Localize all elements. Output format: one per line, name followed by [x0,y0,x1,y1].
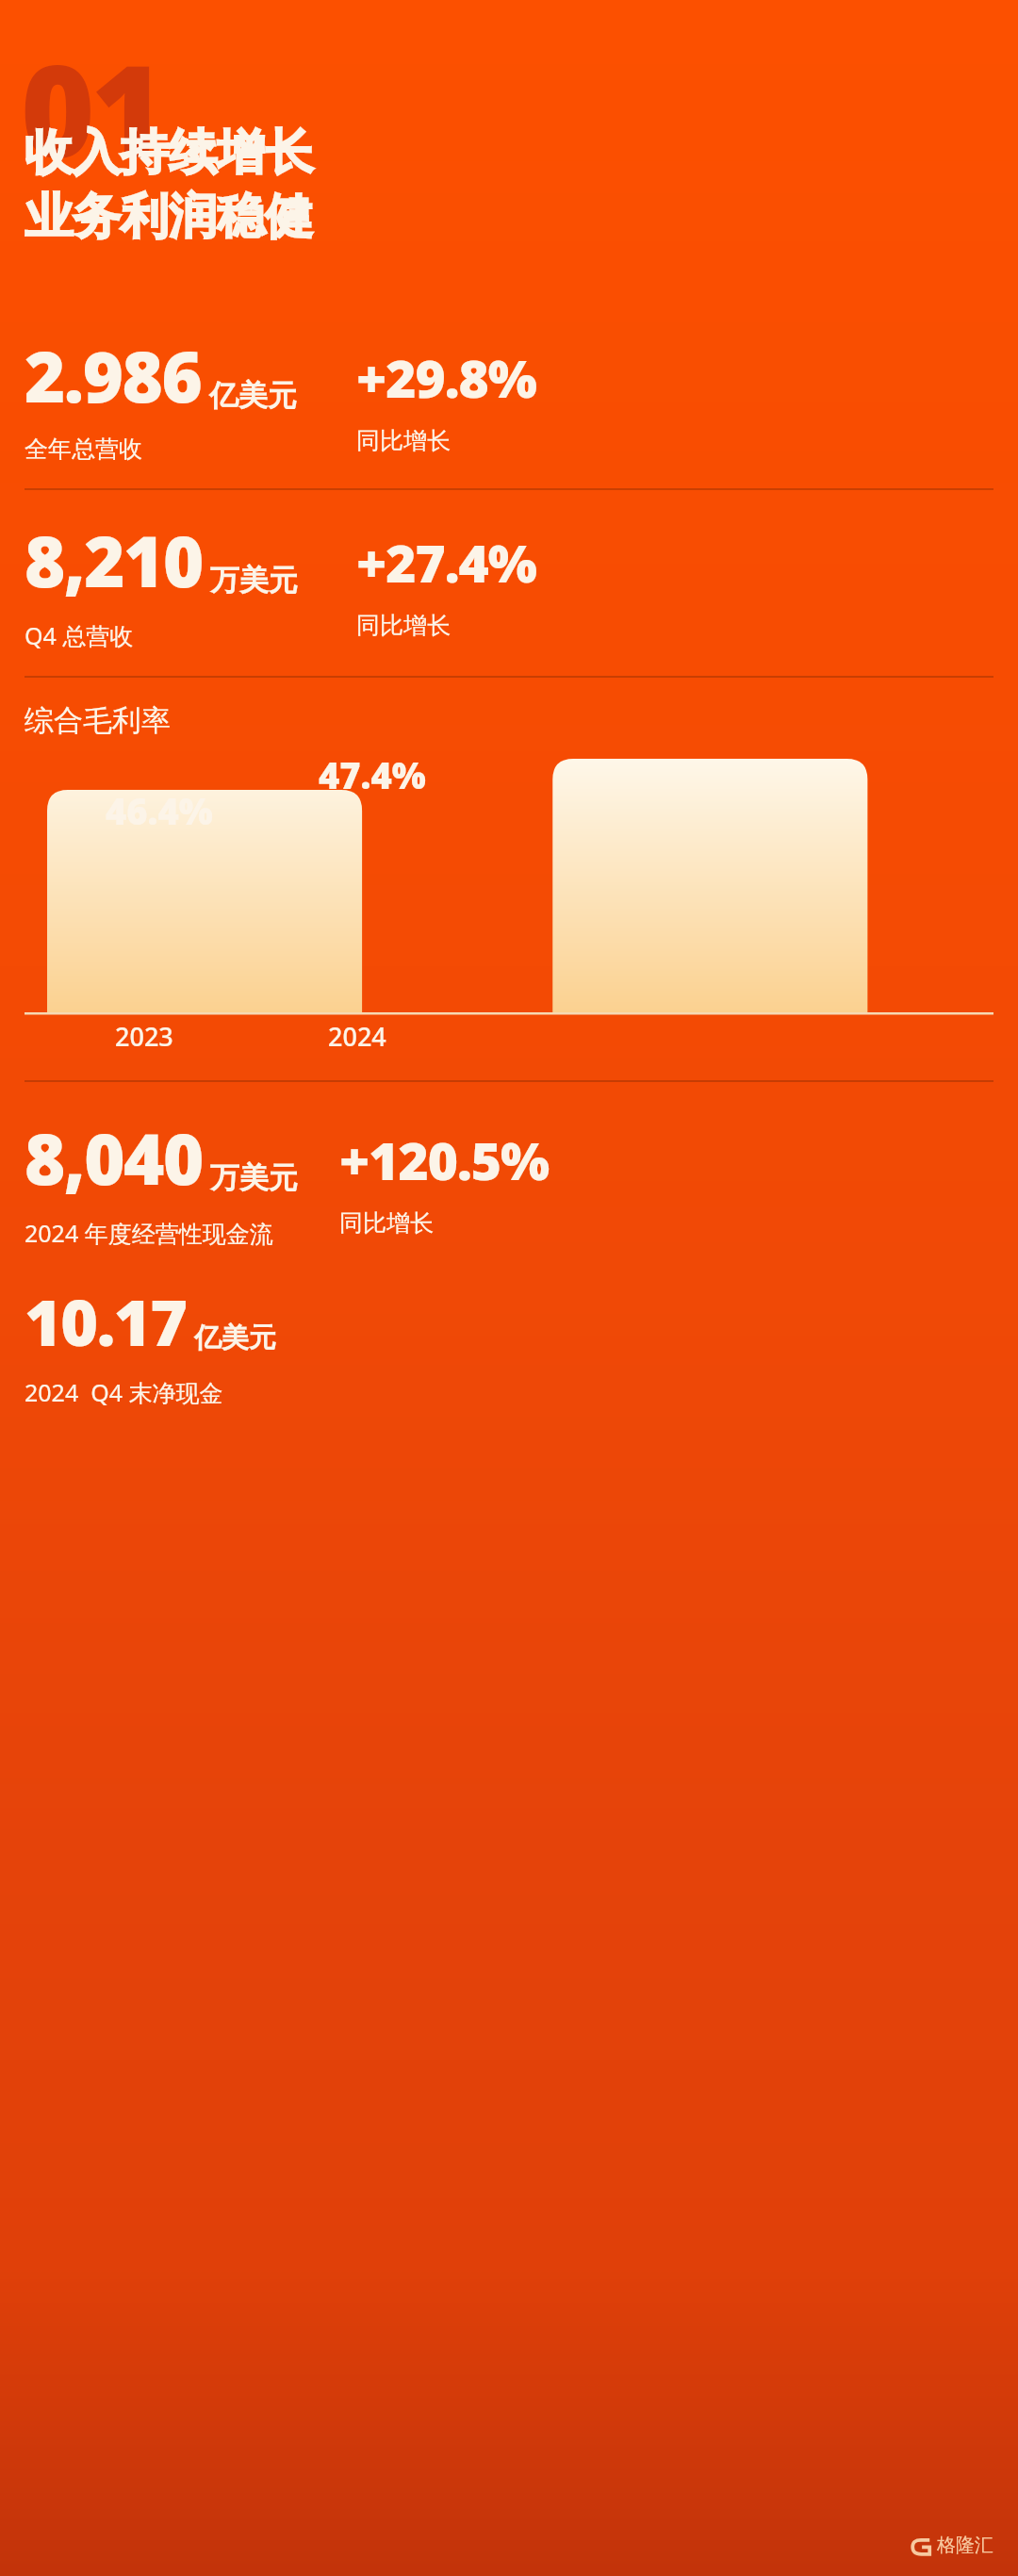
staticText: 同比增长 [339,1208,434,1238]
staticText: 01 [21,23,162,166]
button[interactable]: 8,210 [25,513,993,651]
staticText: 2023 [115,1019,173,1054]
staticText: 2024 Q4 末净现金 [25,1376,223,1408]
button[interactable]: 8,040 [25,1110,993,1249]
staticText: 格隆汇 [937,2534,993,2557]
staticText: +120.5% [339,1124,550,1195]
button[interactable]: Gelonghui watermark [905,2528,999,2563]
staticText: 2.986 [25,328,202,423]
staticText: 2024 年度经营性现金流 [25,1217,273,1249]
staticText: 2024 [328,1019,386,1054]
staticText: 综合毛利率 [25,702,171,739]
staticText: 万美元 [210,562,298,599]
staticText: 46.4% [106,786,213,835]
staticText: 8,210 [25,513,203,608]
staticText: 8,040 [25,1110,203,1206]
staticText: 亿美元 [209,377,297,414]
staticText: Q4 总营收 [25,619,134,651]
staticText: 全年总营收 [25,435,142,464]
staticText: +27.4% [356,527,536,598]
staticText: 47.4% [319,750,426,799]
staticText: +29.8% [356,342,536,413]
button[interactable]: 10.17 [25,1277,993,1408]
staticText: 收入持续增长 [25,123,313,183]
staticText: 亿美元 [194,1321,276,1355]
staticText: 业务利润稳健 [25,187,313,247]
staticText: 同比增长 [356,611,451,640]
staticText: 万美元 [210,1159,298,1196]
button[interactable]: 2.986 [25,328,993,464]
staticText: 10.17 [25,1277,187,1365]
staticText: 同比增长 [356,426,451,455]
